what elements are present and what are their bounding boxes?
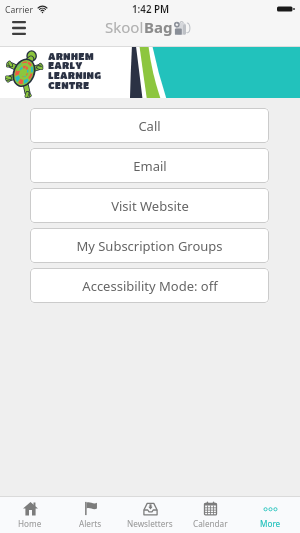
button[interactable]: Calendar bbox=[180, 497, 240, 533]
staticText: More bbox=[260, 518, 281, 529]
button[interactable]: Call bbox=[30, 108, 269, 143]
staticText: Call bbox=[138, 117, 161, 135]
button[interactable]: More bbox=[240, 497, 300, 533]
staticText: Skool bbox=[105, 17, 144, 37]
staticText: Email bbox=[133, 157, 167, 175]
staticText: My Subscription Groups bbox=[76, 237, 223, 255]
button[interactable]: Accessibility Mode: off bbox=[30, 268, 269, 303]
button[interactable]: Newsletters bbox=[120, 497, 180, 533]
staticText: 1:42 PM bbox=[132, 3, 170, 16]
button[interactable]: Visit Website bbox=[30, 188, 269, 223]
staticText: Carrier bbox=[5, 4, 33, 16]
staticText: Accessibility Mode: off bbox=[82, 277, 218, 295]
button[interactable]: My Subscription Groups bbox=[30, 228, 269, 263]
button[interactable]: Open navigation menu bbox=[4, 18, 33, 38]
staticText: Newsletters bbox=[127, 518, 173, 529]
staticText: Home bbox=[18, 518, 42, 529]
staticText: Alerts bbox=[79, 518, 102, 529]
staticText: Calendar bbox=[193, 518, 228, 529]
staticText: Bag bbox=[144, 17, 173, 37]
button[interactable]: Email bbox=[30, 148, 269, 183]
staticText: Visit Website bbox=[111, 197, 189, 215]
staticText: ARNHEM EARLY LEARNING CENTRE bbox=[48, 50, 102, 91]
button[interactable]: Home bbox=[0, 497, 60, 533]
button[interactable]: Alerts bbox=[60, 497, 120, 533]
